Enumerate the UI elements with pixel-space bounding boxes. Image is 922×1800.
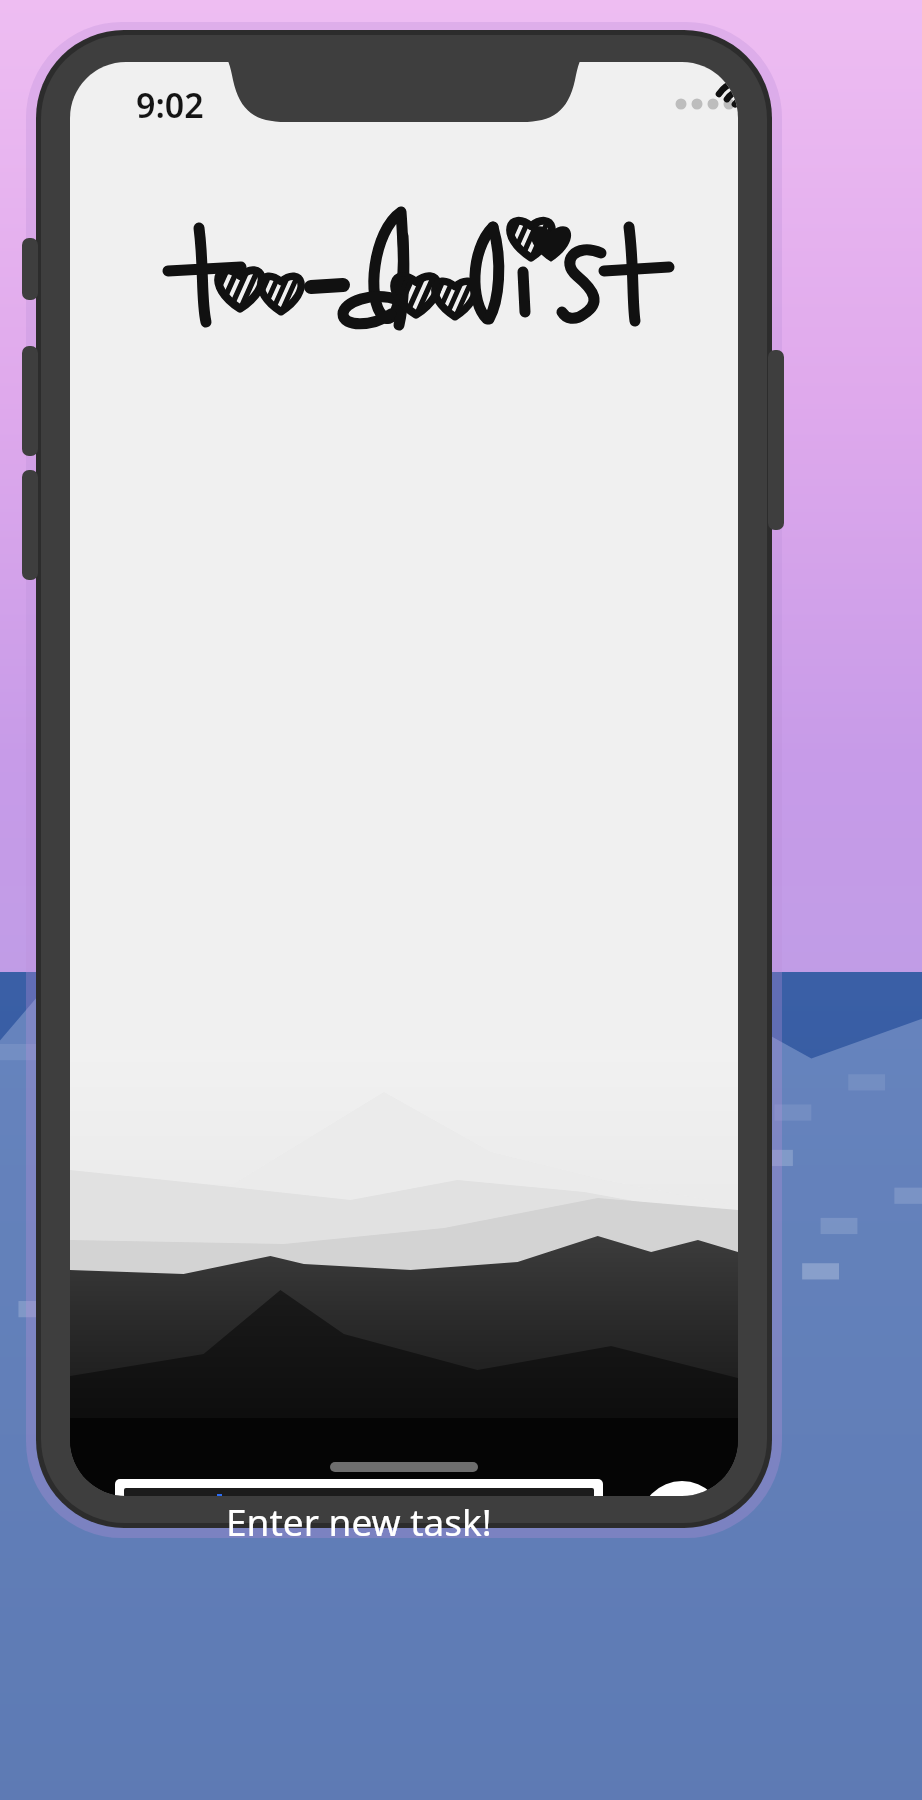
button[interactable]: Add task xyxy=(640,1481,724,1565)
staticText: Enter new task! xyxy=(226,1496,492,1546)
button[interactable]: Delete all tasks xyxy=(735,1478,815,1566)
staticText: 9:02 xyxy=(136,82,204,128)
button[interactable] xyxy=(115,1479,603,1561)
